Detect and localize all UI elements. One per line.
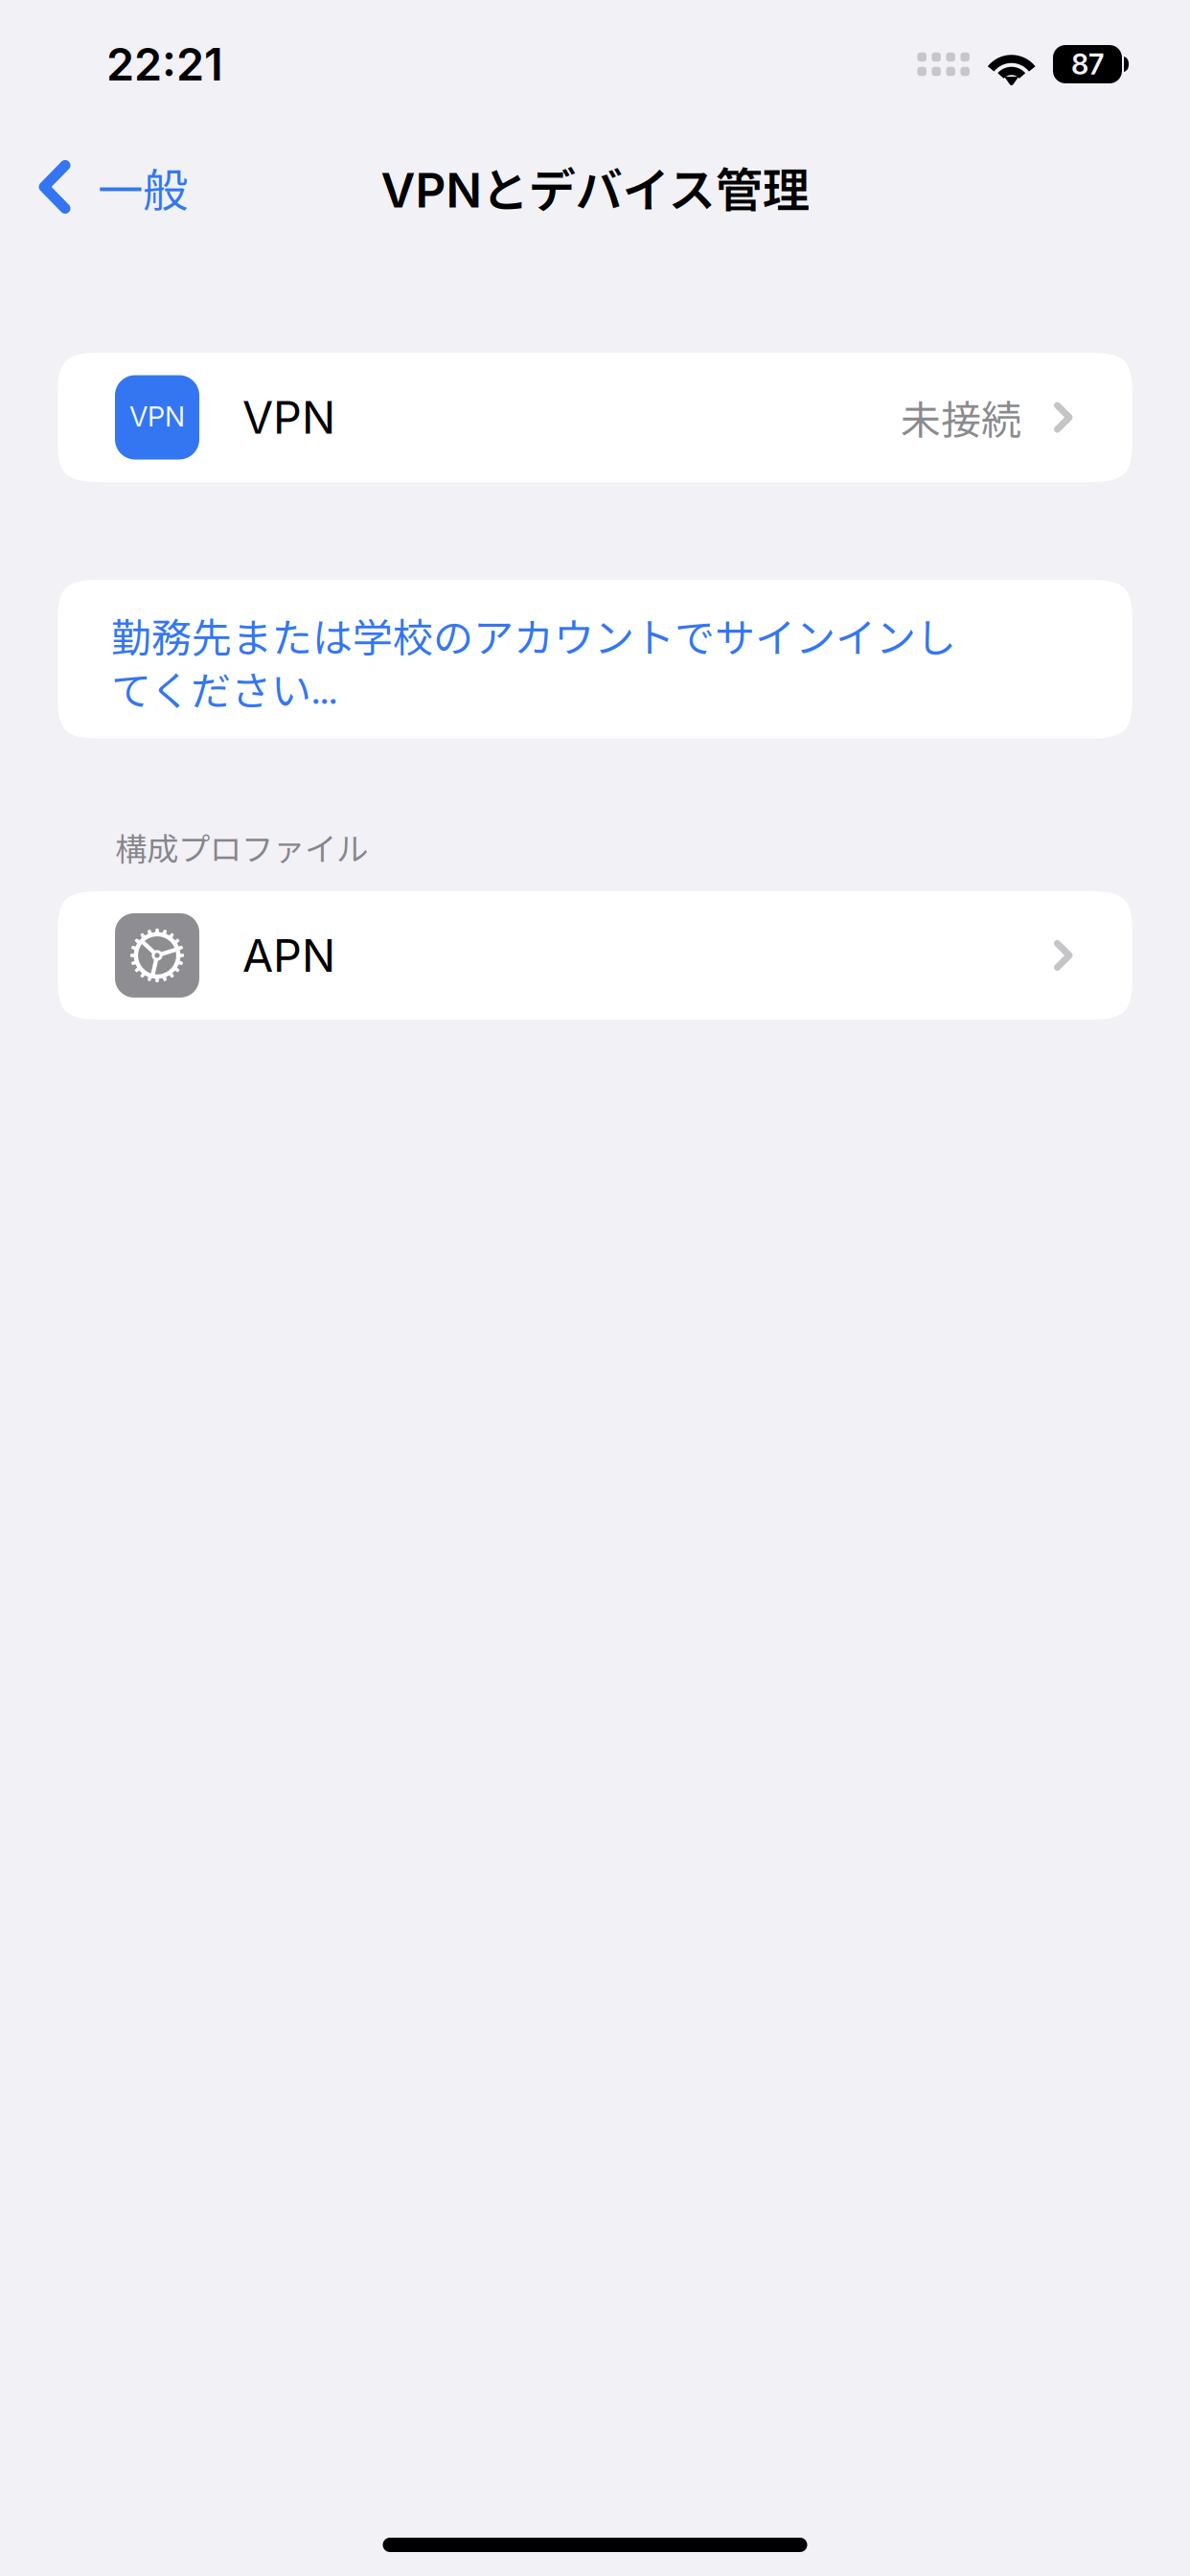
button[interactable]: 一般 xyxy=(0,139,207,235)
button[interactable]: VPN xyxy=(57,353,1133,482)
staticText: 勤務先または学校のアカウントでサインインしてください... xyxy=(111,609,956,715)
staticText: 未接続 xyxy=(901,388,1021,446)
staticText: VPNとデバイス管理 xyxy=(381,153,809,221)
staticText: VPN xyxy=(242,390,335,444)
staticText: 87 xyxy=(1071,47,1104,81)
staticText: 22:21 xyxy=(106,37,223,91)
staticText: APN xyxy=(242,928,335,982)
staticText: VPN xyxy=(129,400,185,433)
staticText: 一般 xyxy=(98,154,188,220)
button[interactable]: APN xyxy=(57,891,1133,1020)
button[interactable]: 勤務先または学校のアカウントでサインインしてください... xyxy=(57,580,1133,739)
staticText: 構成プロファイル xyxy=(115,824,368,870)
